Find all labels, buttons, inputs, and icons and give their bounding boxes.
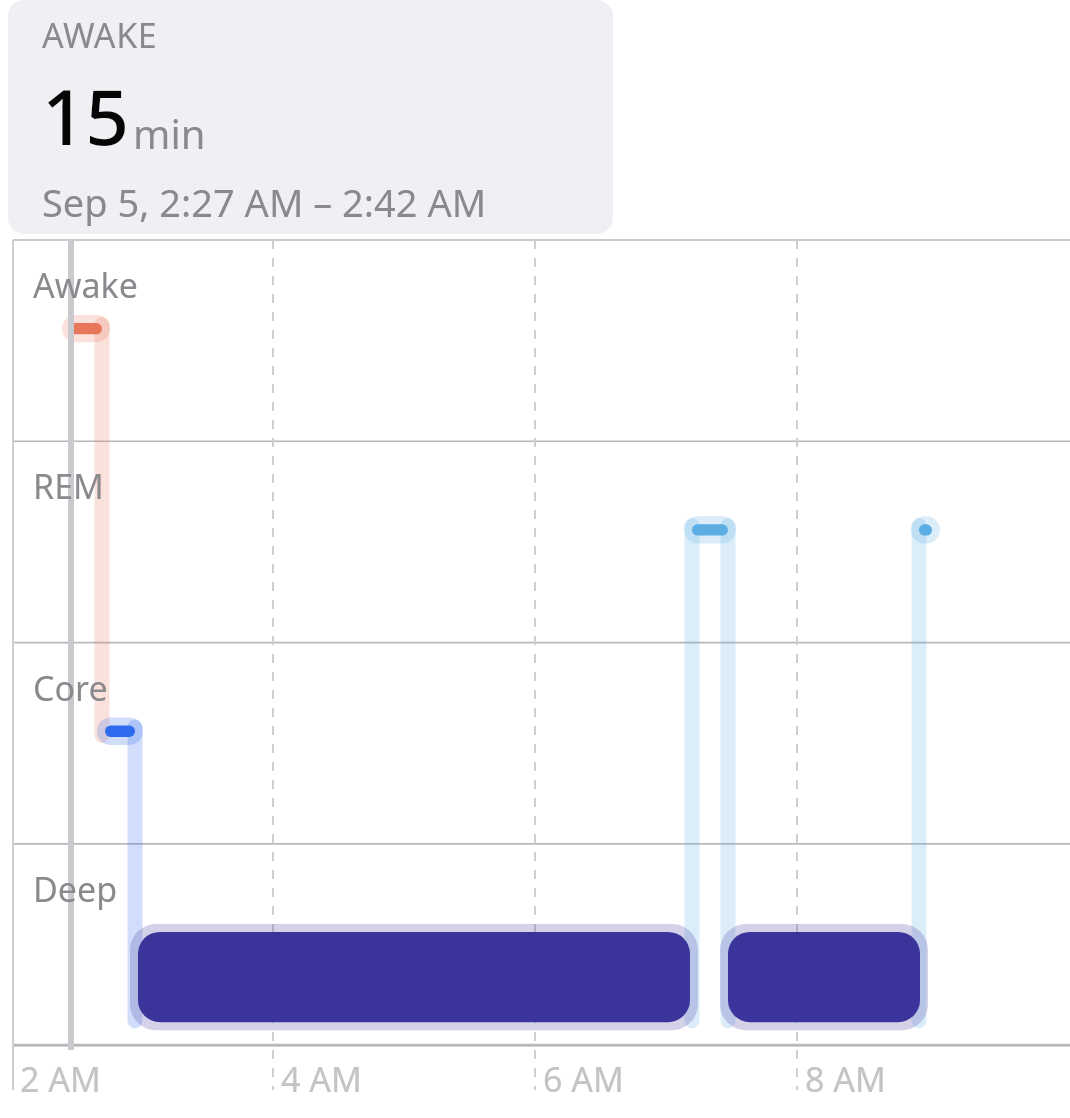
staticText: Deep	[33, 866, 118, 912]
staticText: 4 AM	[281, 1056, 362, 1102]
staticText: 15	[42, 64, 129, 168]
staticText: Sep 5, 2:27 AM – 2:42 AM	[42, 176, 487, 228]
button[interactable]: Sleep stages chart	[0, 0, 1070, 1118]
staticText: 6 AM	[543, 1056, 624, 1102]
staticText: 8 AM	[805, 1056, 886, 1102]
staticText: Awake	[33, 262, 138, 308]
staticText: AWAKE	[42, 12, 158, 58]
staticText: min	[133, 106, 206, 160]
button[interactable]: AWAKE	[8, 0, 613, 234]
staticText: 2 AM	[20, 1056, 101, 1102]
staticText: Core	[33, 665, 108, 711]
staticText: REM	[33, 463, 104, 509]
